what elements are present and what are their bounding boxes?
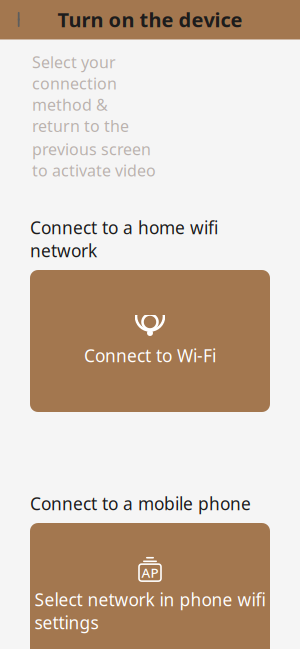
staticText: Connect to a home wifi network: [30, 216, 218, 262]
staticText: AP: [141, 564, 158, 581]
button[interactable]: Connect to Wi-Fi: [30, 270, 270, 412]
staticText: Connect to Wi-Fi: [84, 344, 216, 367]
button[interactable]: AP: [30, 523, 270, 649]
staticText: Select your connection method & return t…: [32, 51, 129, 136]
staticText: previous screen to activate video: [32, 138, 156, 181]
button[interactable]: Back: [0, 0, 40, 39]
staticText: Select network in phone wifi settings: [34, 588, 265, 634]
staticText: Connect to a mobile phone: [30, 492, 251, 515]
staticText: Turn on the device: [57, 6, 242, 33]
